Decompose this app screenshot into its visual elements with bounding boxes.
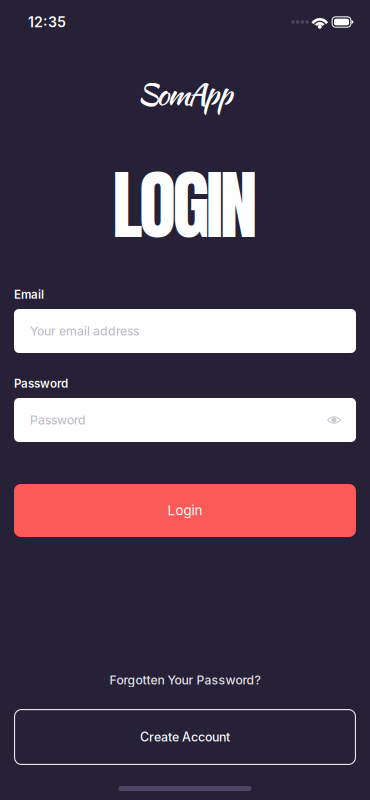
button[interactable]: Show password bbox=[327, 415, 341, 425]
staticText: Login bbox=[167, 502, 202, 518]
staticText: Your email address bbox=[30, 323, 139, 338]
staticText: 12:35 bbox=[28, 13, 66, 30]
staticText: LOGIN bbox=[112, 148, 258, 262]
staticText: Email bbox=[14, 287, 44, 301]
staticText: Forgotten Your Password? bbox=[109, 673, 260, 687]
button[interactable]: Forgotten Your Password? bbox=[109, 672, 260, 688]
staticText: Create Account bbox=[140, 729, 230, 744]
button[interactable]: Login bbox=[14, 484, 356, 537]
button[interactable]: Create Account bbox=[14, 709, 356, 765]
staticText: SomApp bbox=[137, 73, 232, 116]
staticText: Password bbox=[30, 412, 86, 427]
staticText: Password bbox=[14, 376, 68, 390]
